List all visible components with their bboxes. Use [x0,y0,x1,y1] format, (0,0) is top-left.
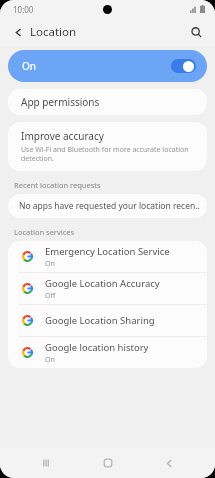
button[interactable]: Back [8,22,28,42]
staticText: Improve accuracy [21,129,104,143]
staticText: Google Location Sharing [45,314,155,327]
button[interactable]: Recents [31,448,61,478]
staticText: App permissions [21,95,100,109]
button[interactable]: Back [154,448,184,478]
staticText: Off [45,291,56,301]
button[interactable]: Emergency Location Service [8,241,207,272]
staticText: On [22,59,36,73]
staticText: 10:00 [13,4,34,15]
button[interactable]: Google Location Sharing [8,305,207,336]
button[interactable]: Google location history [8,337,207,368]
staticText: Use Wi-Fi and Bluetooth for more accurat… [21,145,194,163]
button[interactable]: No apps have requested your location rec… [8,194,207,218]
staticText: Location services [14,227,75,237]
staticText: On [45,355,55,365]
staticText: Recent location requests [14,180,101,190]
staticText: Emergency Location Service [45,245,170,258]
button[interactable]: On [8,50,207,82]
staticText: Location [30,24,77,40]
staticText: No apps have requested your location rec… [19,200,200,212]
button[interactable]: App permissions [8,89,207,115]
staticText: On [45,259,55,269]
staticText: Google location history [45,341,149,354]
button[interactable]: Google Location Accuracy [8,273,207,304]
button[interactable]: Search [185,21,207,43]
button[interactable]: Home [93,448,123,478]
staticText: Google Location Accuracy [45,277,160,290]
button[interactable]: Improve accuracy [8,122,207,171]
